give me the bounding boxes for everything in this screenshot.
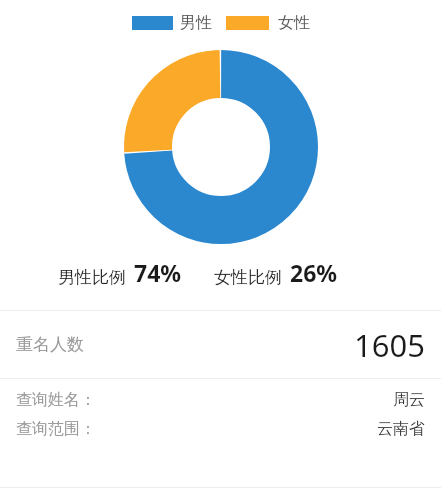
staticText: 男性: [180, 13, 212, 33]
button[interactable]: 女性: [226, 13, 310, 33]
staticText: 女性: [278, 13, 310, 33]
staticText: 26%: [290, 257, 338, 288]
staticText: 查询范围：: [16, 419, 96, 439]
button[interactable]: 查询范围：: [0, 414, 441, 443]
staticText: 周云: [393, 390, 425, 410]
button[interactable]: 查询姓名：: [0, 385, 441, 414]
staticText: 男性比例: [58, 267, 126, 288]
other: 性别比例环形图: [124, 50, 318, 244]
staticText: 女性比例: [214, 267, 282, 288]
button[interactable]: 女性比例: [214, 257, 338, 288]
button[interactable]: 男性比例: [58, 257, 182, 288]
button[interactable]: 男性: [132, 13, 212, 33]
button[interactable]: 重名人数: [0, 311, 441, 378]
staticText: 74%: [134, 257, 182, 288]
staticText: 云南省: [377, 419, 425, 439]
staticText: 1605: [354, 324, 425, 366]
staticText: 查询姓名：: [16, 390, 96, 410]
staticText: 重名人数: [16, 334, 84, 355]
